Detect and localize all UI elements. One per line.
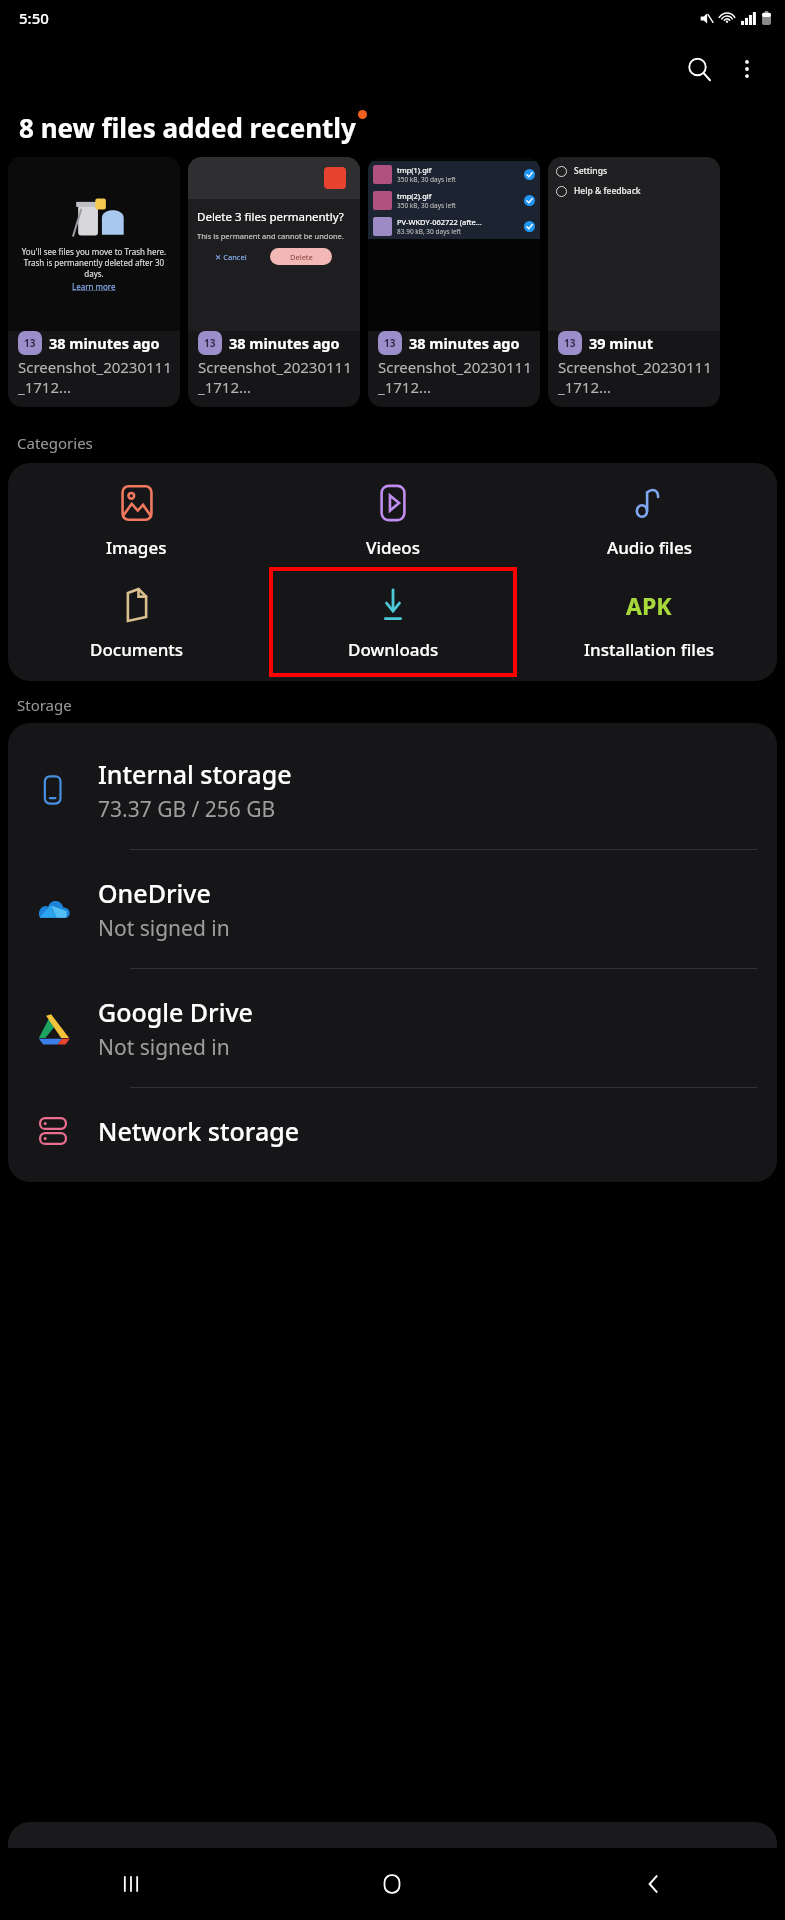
button[interactable]: You'll see files you move to Trash here.…	[8, 157, 180, 407]
staticText: 8 new files added recently	[19, 110, 356, 145]
staticText: OneDrive	[98, 876, 211, 910]
staticText: tmp(1).gif	[397, 165, 432, 175]
staticText: Internal storage	[98, 757, 292, 791]
staticText: 5:50	[19, 8, 49, 28]
staticText: Google Drive	[98, 995, 253, 1029]
button[interactable]: Documents	[8, 583, 265, 663]
staticText: Images	[106, 536, 167, 559]
button[interactable]: Settings	[548, 157, 720, 407]
staticText: 13	[24, 336, 36, 350]
button[interactable]: APK	[521, 583, 777, 663]
button[interactable]: Search	[675, 45, 723, 93]
button[interactable]: Delete 3 files permanently?	[188, 157, 360, 407]
button[interactable]: Images	[8, 481, 265, 561]
button[interactable]: Network storage	[8, 1088, 777, 1174]
button[interactable]: Videos	[265, 481, 521, 561]
staticText: Delete 3 files permanently?	[197, 209, 344, 225]
staticText: 38 minutes ago	[49, 333, 160, 353]
button[interactable]: OneDrive	[8, 850, 777, 968]
staticText: Screenshot_20230111_1712...	[198, 357, 354, 397]
staticText: Documents	[90, 638, 184, 661]
staticText: Not signed in	[98, 1033, 230, 1062]
button[interactable]: Home	[261, 1848, 523, 1920]
button[interactable]: tmp(1).gif	[368, 157, 540, 407]
staticText: Not signed in	[98, 914, 230, 943]
staticText: 38 minutes ago	[229, 333, 340, 353]
staticText: Categories	[17, 433, 93, 453]
staticText: 13	[564, 336, 576, 350]
staticText: tmp(2).gif	[397, 191, 432, 201]
staticText: 83.90 kB, 30 days left	[397, 227, 462, 236]
staticText: 13	[384, 336, 396, 350]
button[interactable]: Back	[523, 1848, 785, 1920]
button[interactable]: Recents	[0, 1848, 261, 1920]
staticText: APK	[626, 590, 672, 621]
button[interactable]: Google Drive	[8, 969, 777, 1087]
staticText: 73.37 GB / 256 GB	[98, 795, 276, 824]
staticText: PV-WKDY-062722 (afte...	[397, 217, 482, 227]
staticText: ✕ Cancel	[215, 252, 247, 262]
staticText: You'll see files you move to Trash here.…	[20, 246, 168, 279]
staticText: 350 kB, 30 days left	[397, 175, 456, 184]
staticText: This is permanent and cannot be undone.	[197, 231, 344, 241]
staticText: Downloads	[348, 638, 439, 661]
staticText: Learn more	[72, 281, 116, 292]
button[interactable]: Audio files	[521, 481, 777, 561]
staticText: Settings	[574, 165, 608, 177]
staticText: Screenshot_20230111_1712...	[558, 357, 714, 397]
staticText: Delete	[290, 252, 313, 262]
button[interactable]: Downloads	[265, 583, 521, 663]
staticText: Network storage	[98, 1114, 300, 1148]
staticText: Installation files	[584, 638, 714, 661]
staticText: Storage	[17, 695, 72, 715]
staticText: Screenshot_20230111_1712...	[378, 357, 534, 397]
staticText: Videos	[366, 536, 420, 559]
staticText: 350 kB, 30 days left	[397, 201, 456, 210]
staticText: 38 minutes ago	[409, 333, 520, 353]
staticText: Screenshot_20230111_1712...	[18, 357, 174, 397]
staticText: Audio files	[607, 536, 692, 559]
staticText: Help & feedback	[574, 185, 641, 197]
staticText: 39 minut	[589, 333, 653, 353]
button[interactable]: More options	[723, 45, 771, 93]
staticText: 13	[204, 336, 216, 350]
button[interactable]: Internal storage	[8, 731, 777, 849]
